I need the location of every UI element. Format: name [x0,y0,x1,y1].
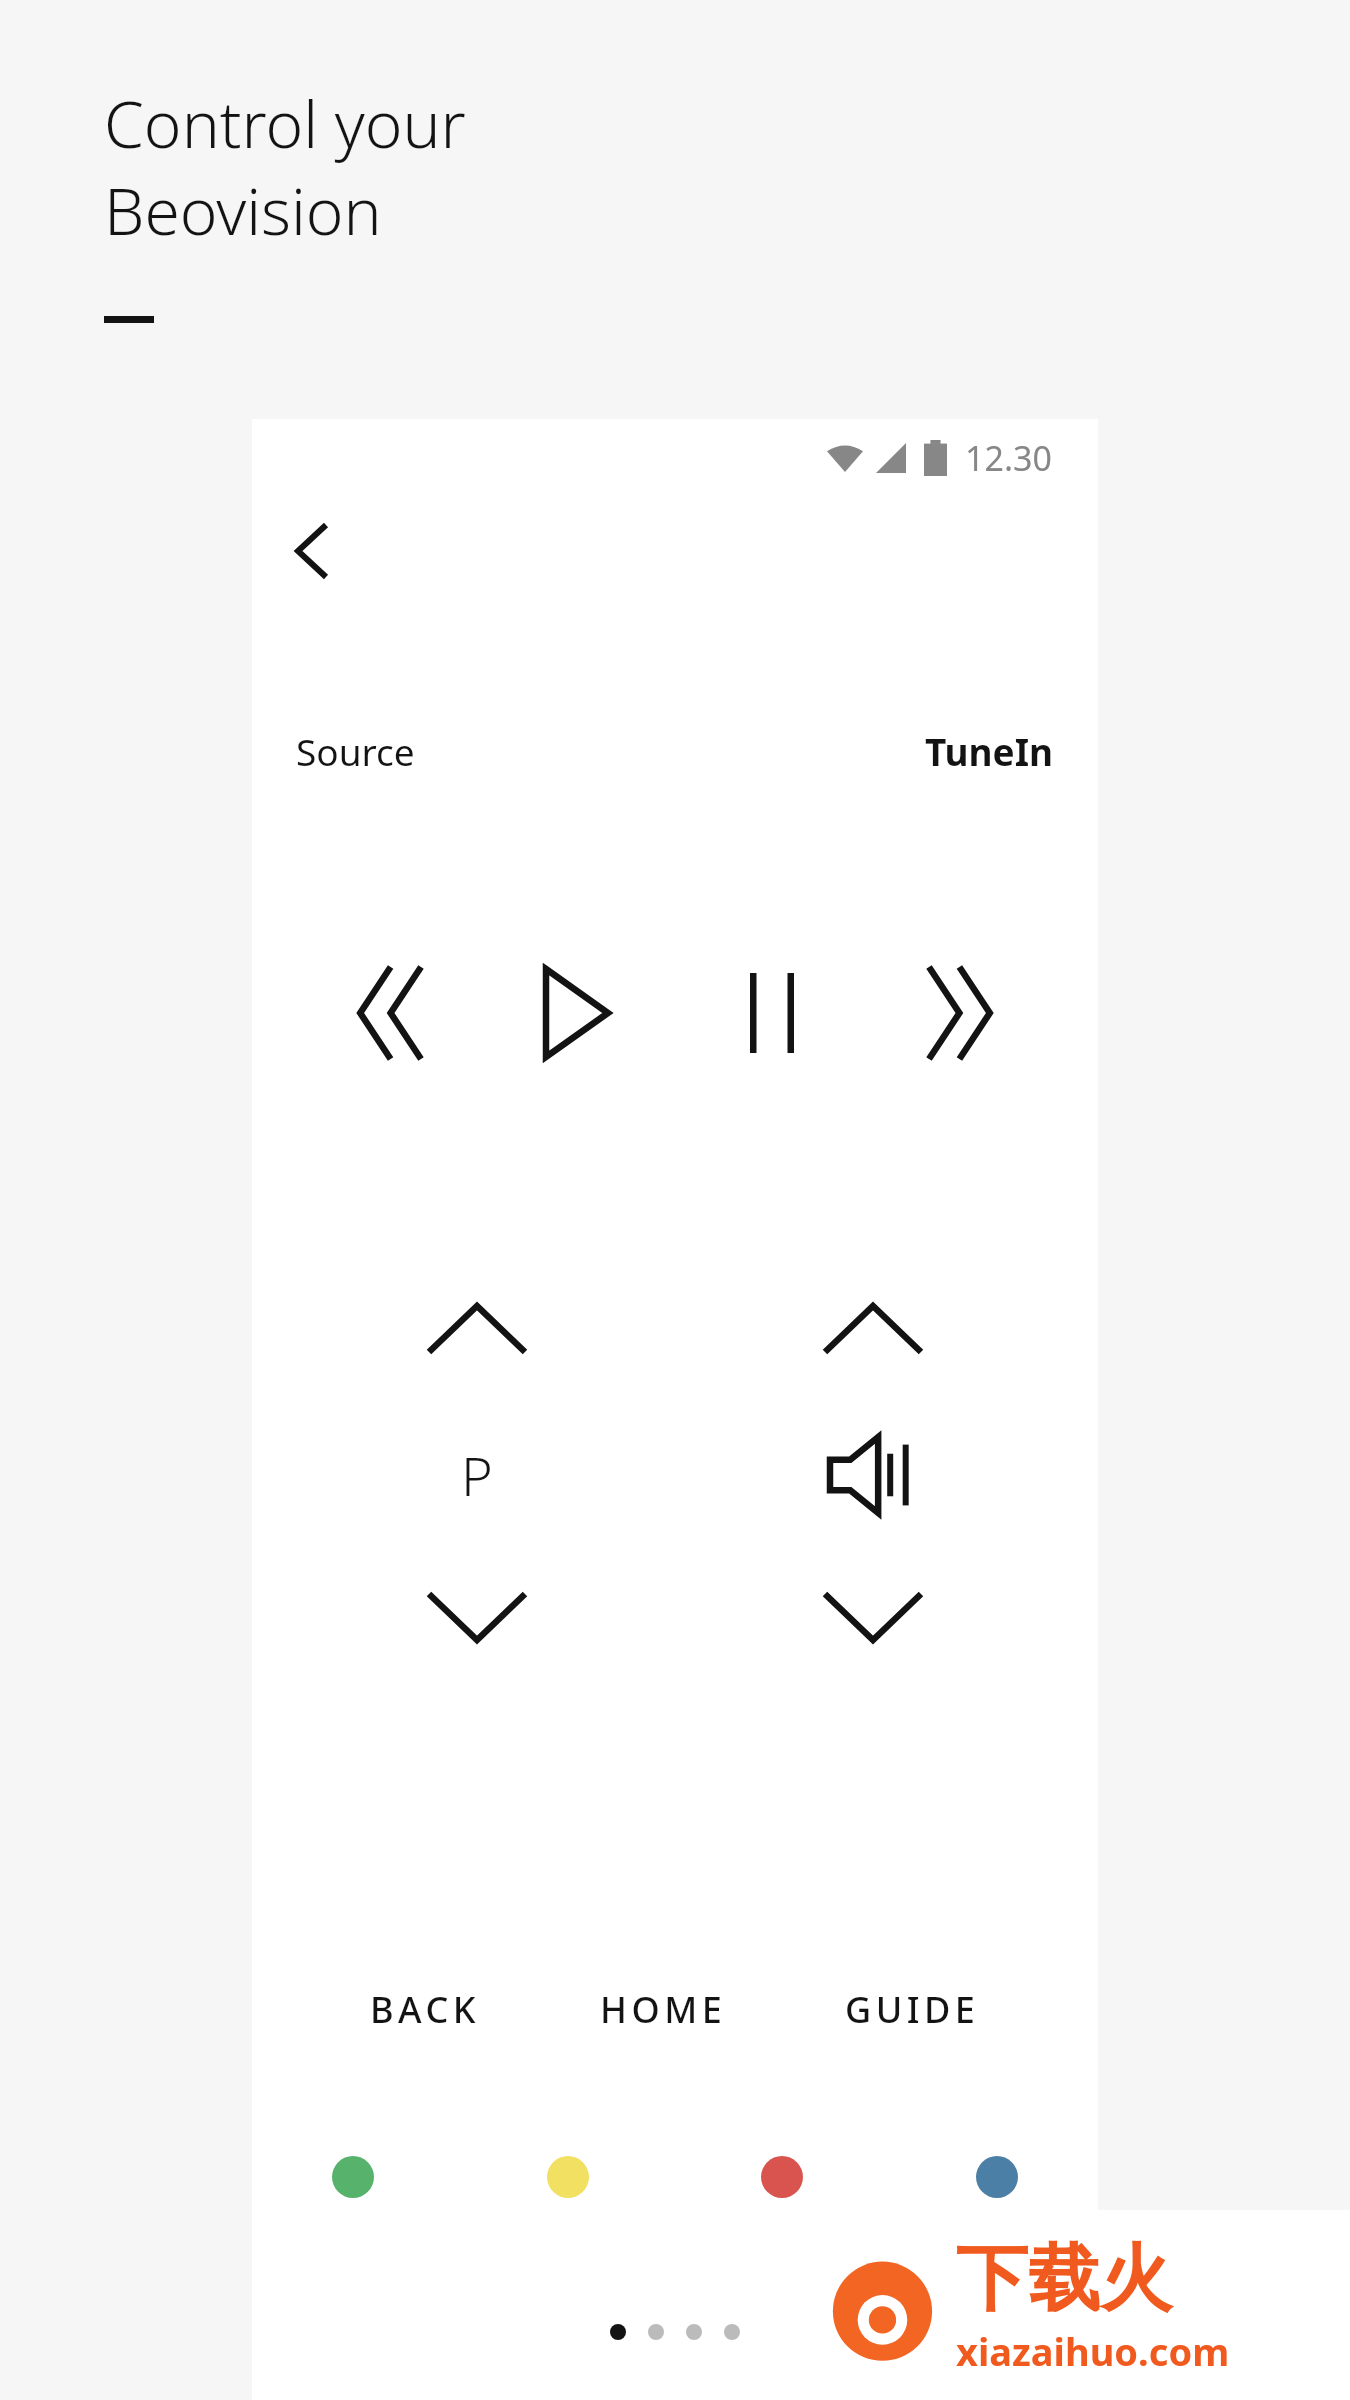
button[interactable]: P [397,1431,557,1519]
button[interactable]: Pause [674,933,869,1093]
staticText: GUIDE [845,1985,980,2034]
button[interactable]: Play [480,933,674,1093]
button[interactable]: BACK [370,1985,481,2034]
staticText: Source [296,726,415,776]
button[interactable]: Programme up [397,1283,557,1375]
staticText: 下载火 [956,2234,1172,2325]
staticText: TuneIn [925,726,1054,776]
button[interactable] [793,1431,953,1519]
button[interactable]: HOME [600,1985,727,2034]
button[interactable]: Yellow button [525,2134,611,2220]
button[interactable]: Red button [739,2134,825,2220]
button[interactable]: Source [296,719,1054,783]
staticText: BACK [370,1985,481,2034]
staticText: xiazaihuo.com [956,2325,1230,2377]
button[interactable]: Previous [286,933,480,1093]
staticText: HOME [600,1985,727,2034]
staticText: P [461,1438,493,1512]
button[interactable]: Back [264,503,360,599]
staticText: Control your [104,80,466,167]
button[interactable]: Programme down [397,1571,557,1663]
button[interactable]: Volume down [793,1571,953,1663]
button[interactable]: Volume up [793,1283,953,1375]
button[interactable]: Next [869,933,1064,1093]
staticText: Beovision [104,167,382,254]
button[interactable]: GUIDE [845,1985,980,2034]
button[interactable]: Green button [310,2134,396,2220]
button[interactable]: Blue button [954,2134,1040,2220]
staticText: 12.30 [965,435,1052,481]
